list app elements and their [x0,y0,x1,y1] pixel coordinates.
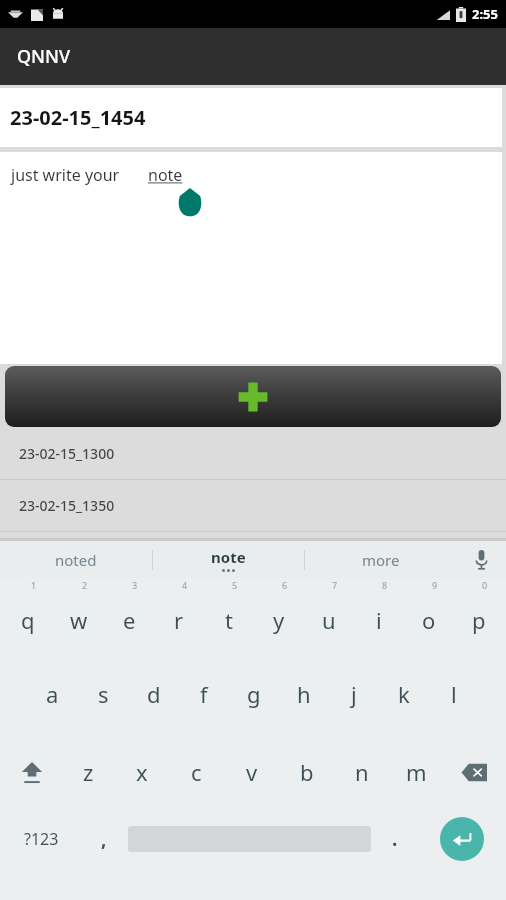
button[interactable]: 8 [354,578,404,655]
staticText: ?123 [24,828,59,850]
button[interactable]: a [27,655,78,733]
staticText: 7 [332,579,338,591]
staticText: l [451,679,457,709]
button[interactable]: . [371,811,419,867]
button[interactable]: 9 [404,578,454,655]
staticText: 0 [482,579,488,591]
staticText: k [398,679,410,709]
staticText: y [273,605,285,635]
button[interactable] [128,811,371,867]
staticText: o [422,605,436,635]
button[interactable]: 7 [304,578,354,655]
staticText: . [392,826,398,852]
button[interactable]: 6 [254,578,304,655]
staticText: a [46,679,59,709]
button[interactable]: Shift [2,733,61,811]
button[interactable]: 4 [154,578,204,655]
staticText: t [225,605,233,635]
staticText: 23-02-15_1454 [10,104,146,131]
staticText: f [200,679,208,709]
staticText: note [211,547,246,567]
staticText: noted [55,550,97,570]
button[interactable]: 23-02-15_1300 [0,428,506,479]
staticText: 6 [282,579,288,591]
staticText: x [136,757,148,787]
staticText: 4 [182,579,188,591]
staticText: w [70,605,88,635]
staticText: e [123,605,136,635]
staticText: b [300,757,314,787]
staticText: s [98,679,109,709]
button[interactable]: h [279,655,329,733]
button[interactable]: note [153,541,304,578]
staticText: p [472,605,486,635]
button[interactable]: d [129,655,179,733]
button[interactable]: v [224,733,279,811]
staticText: h [297,679,311,709]
staticText: 3 [132,579,138,591]
staticText: j [351,679,357,709]
button[interactable]: just write your [0,152,502,364]
staticText: r [174,605,184,635]
button[interactable]: noted [0,541,152,578]
button[interactable]: z [61,733,115,811]
staticText: QNNV [17,44,71,69]
staticText: note [148,164,183,186]
button[interactable]: g [229,655,279,733]
button[interactable]: , [80,811,128,867]
button[interactable]: j [329,655,379,733]
button[interactable]: Add note [5,366,501,427]
button[interactable]: 3 [104,578,154,655]
staticText: v [246,757,258,787]
staticText: u [322,605,336,635]
button[interactable]: k [379,655,429,733]
button[interactable]: ?123 [2,811,80,867]
button[interactable]: Backspace [444,733,504,811]
staticText: i [376,605,382,635]
staticText: 8 [382,579,388,591]
button[interactable]: Voice input [456,541,506,578]
button[interactable]: b [279,733,334,811]
staticText: n [355,757,369,787]
staticText: 5 [232,579,238,591]
staticText: 2:55 [472,5,498,23]
button[interactable]: 0 [454,578,504,655]
button[interactable]: m [389,733,444,811]
button[interactable]: x [115,733,169,811]
button[interactable]: l [429,655,479,733]
staticText: m [406,757,427,787]
staticText: 23-02-15_1300 [19,444,115,463]
button[interactable]: Enter [419,811,504,867]
staticText: z [83,757,94,787]
staticText: 2 [82,579,88,591]
staticText: , [101,826,107,852]
button[interactable]: s [78,655,129,733]
button[interactable]: 23-02-15_1454 [0,88,502,147]
staticText: just write your [11,164,124,186]
staticText: d [147,679,161,709]
staticText: c [191,757,202,787]
staticText: 9 [432,579,438,591]
button[interactable]: n [334,733,389,811]
button[interactable]: c [169,733,224,811]
staticText: more [362,550,400,570]
staticText: q [21,605,35,635]
button[interactable]: 1 [2,578,53,655]
button[interactable]: 5 [204,578,254,655]
staticText: g [247,679,261,709]
button[interactable]: 2 [53,578,104,655]
button[interactable]: f [179,655,229,733]
staticText: 23-02-15_1350 [19,496,115,515]
button[interactable]: 23-02-15_1350 [0,480,506,531]
staticText: 1 [31,579,37,591]
button[interactable]: more [305,541,456,578]
